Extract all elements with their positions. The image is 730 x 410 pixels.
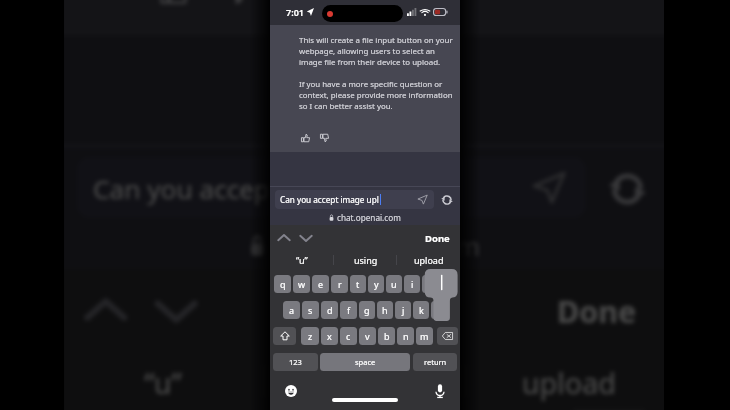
staticText: Done bbox=[557, 291, 637, 333]
staticText: t bbox=[356, 278, 360, 290]
button[interactable]: m bbox=[416, 327, 433, 345]
button[interactable]: “u” bbox=[270, 251, 334, 269]
staticText: e bbox=[318, 278, 324, 290]
button[interactable]: Reload page bbox=[608, 170, 647, 208]
button[interactable]: Good response bbox=[160, 0, 189, 3]
staticText: using bbox=[354, 254, 378, 266]
button[interactable]: Next field bbox=[297, 229, 315, 247]
button[interactable]: Done bbox=[551, 291, 643, 333]
staticText: j bbox=[402, 304, 405, 316]
staticText: m bbox=[420, 330, 429, 342]
staticText: space bbox=[355, 357, 376, 367]
button[interactable]: s bbox=[302, 301, 319, 319]
button[interactable]: p bbox=[440, 275, 456, 293]
button[interactable]: Previous field bbox=[77, 282, 135, 339]
button[interactable]: f bbox=[340, 301, 357, 319]
staticText: f bbox=[347, 304, 351, 316]
button[interactable]: x bbox=[321, 327, 338, 345]
staticText: g bbox=[364, 304, 370, 316]
staticText: upload bbox=[522, 362, 618, 400]
staticText: a bbox=[289, 304, 295, 316]
button[interactable]: i bbox=[404, 275, 420, 293]
staticText: 7:01 bbox=[286, 6, 304, 18]
staticText: s bbox=[308, 304, 313, 316]
staticText: If you have a more specific question or bbox=[299, 79, 443, 90]
staticText: context, please provide more information bbox=[299, 90, 453, 101]
button[interactable]: o bbox=[422, 275, 438, 293]
staticText: upload bbox=[414, 254, 444, 266]
button[interactable]: Good response bbox=[301, 134, 310, 142]
staticText: v bbox=[365, 330, 370, 342]
button[interactable]: e bbox=[312, 275, 329, 293]
button[interactable]: d bbox=[321, 301, 338, 319]
button[interactable]: a bbox=[283, 301, 300, 319]
button[interactable]: n bbox=[397, 327, 414, 345]
button[interactable]: t bbox=[350, 275, 366, 293]
button[interactable]: space bbox=[320, 353, 410, 371]
staticText: so I can better assist you. bbox=[299, 101, 393, 112]
button[interactable]: q bbox=[274, 275, 291, 293]
staticText: y bbox=[374, 278, 379, 290]
button[interactable]: Done bbox=[423, 232, 452, 245]
staticText: chat.openai.com bbox=[337, 212, 401, 223]
staticText: using bbox=[330, 362, 407, 400]
staticText: Done bbox=[425, 232, 450, 245]
button[interactable]: r bbox=[331, 275, 348, 293]
button[interactable]: Bad response bbox=[221, 0, 250, 3]
staticText: x bbox=[327, 330, 332, 342]
button[interactable]: Reload page bbox=[441, 194, 453, 206]
button[interactable]: z bbox=[301, 327, 319, 345]
staticText: return bbox=[424, 357, 447, 367]
staticText: q bbox=[280, 278, 286, 290]
staticText: image file from their device to upload. bbox=[299, 57, 441, 68]
button[interactable]: Bad response bbox=[320, 134, 329, 142]
staticText: w bbox=[298, 278, 306, 290]
staticText: Can you accept image upl bbox=[93, 170, 410, 205]
button[interactable]: w bbox=[293, 275, 310, 293]
staticText: “u” bbox=[144, 362, 183, 400]
button[interactable]: v bbox=[359, 327, 376, 345]
button[interactable]: j bbox=[395, 301, 411, 319]
button[interactable]: upload bbox=[397, 251, 460, 269]
button[interactable]: Next field bbox=[147, 282, 205, 339]
staticText: u bbox=[391, 278, 397, 290]
staticText: Can you accept image upl bbox=[280, 194, 379, 205]
button[interactable]: u bbox=[386, 275, 402, 293]
button[interactable]: upload bbox=[467, 352, 669, 410]
button[interactable]: c bbox=[340, 327, 357, 345]
button[interactable]: l bbox=[431, 301, 447, 319]
button[interactable]: Previous field bbox=[275, 229, 293, 247]
button[interactable]: Can you accept image upl bbox=[275, 190, 434, 209]
button[interactable]: Can you accept image upl bbox=[77, 157, 586, 218]
button[interactable]: 123 bbox=[273, 353, 318, 371]
button[interactable]: Backspace bbox=[437, 327, 458, 345]
staticText: webpage, allowing users to select an bbox=[299, 46, 435, 57]
button[interactable]: b bbox=[378, 327, 395, 345]
button[interactable]: k bbox=[413, 301, 429, 319]
staticText: This will create a file input button on … bbox=[299, 35, 453, 46]
button[interactable]: Shift bbox=[273, 327, 296, 345]
button[interactable]: Dictation bbox=[435, 384, 445, 398]
staticText: z bbox=[308, 330, 313, 342]
button[interactable]: y bbox=[368, 275, 384, 293]
staticText: n bbox=[403, 330, 409, 342]
staticText: r bbox=[338, 278, 342, 290]
staticText: d bbox=[327, 304, 333, 316]
staticText: chat.openai.com bbox=[275, 227, 480, 263]
staticText: k bbox=[419, 304, 424, 316]
staticText: 123 bbox=[289, 357, 302, 367]
staticText: b bbox=[384, 330, 390, 342]
staticText: i bbox=[411, 278, 414, 290]
button[interactable]: “u” bbox=[61, 352, 266, 410]
button[interactable]: using bbox=[334, 251, 397, 269]
staticText: c bbox=[346, 330, 351, 342]
button[interactable]: using bbox=[266, 352, 467, 410]
button[interactable]: return bbox=[413, 353, 457, 371]
staticText: “u” bbox=[296, 254, 308, 266]
button[interactable]: g bbox=[359, 301, 375, 319]
button[interactable]: Emoji keyboard bbox=[285, 385, 297, 397]
button[interactable]: h bbox=[377, 301, 393, 319]
